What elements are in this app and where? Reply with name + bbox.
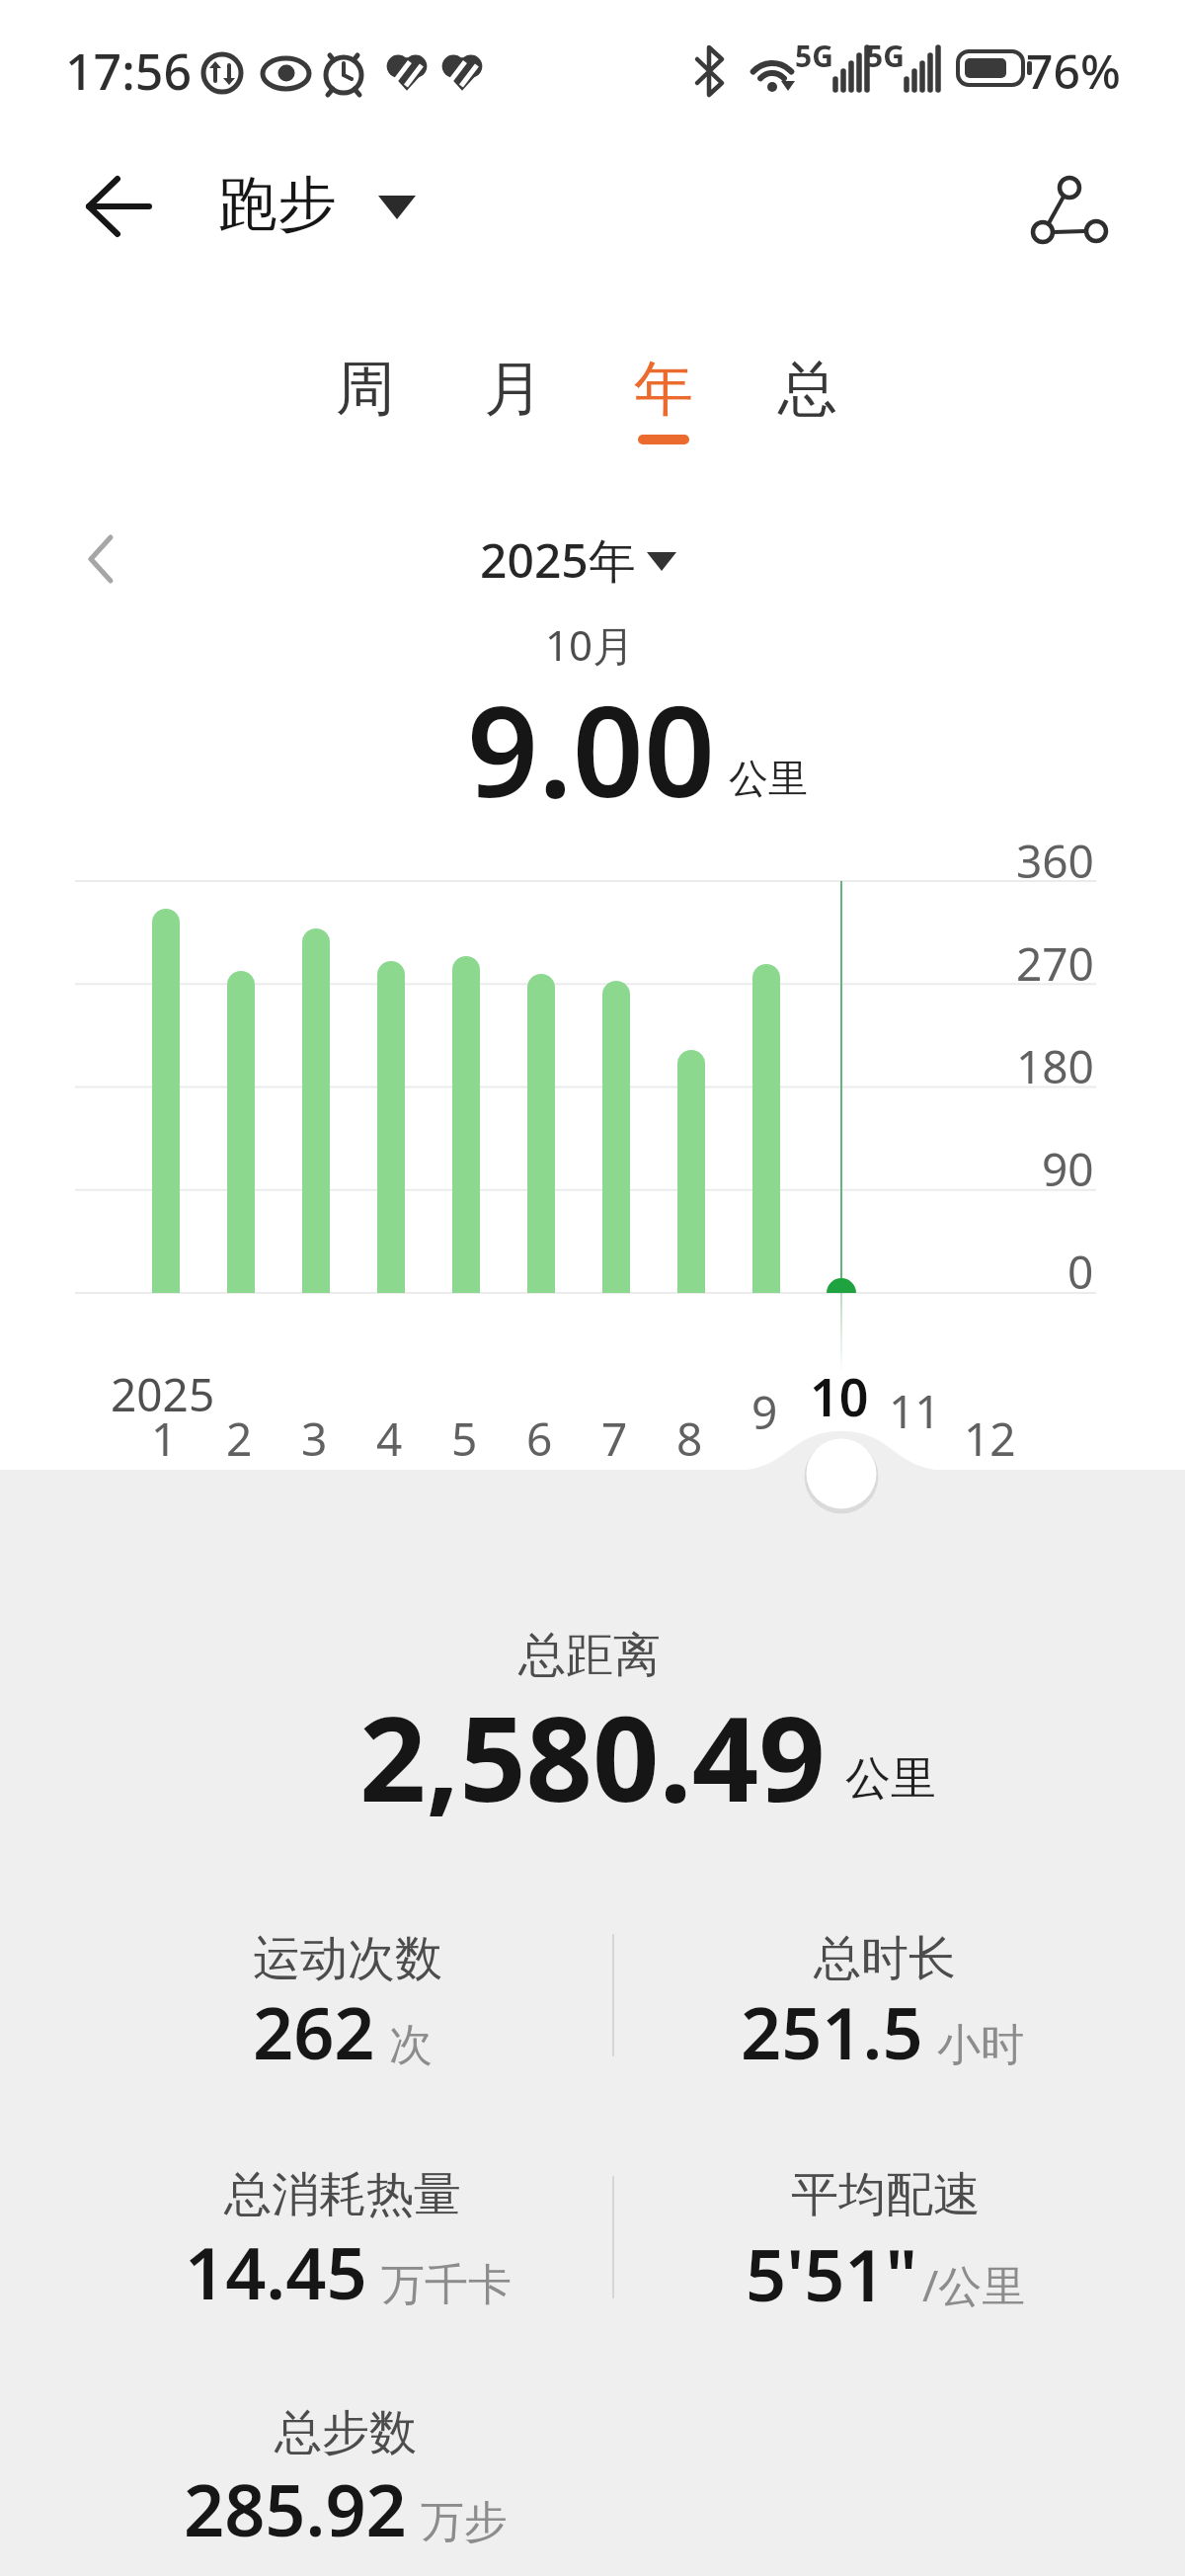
staticText: 12: [964, 1408, 1016, 1470]
button[interactable]: [1017, 158, 1126, 267]
staticText: 285.92: [184, 2460, 407, 2557]
staticText: 次: [389, 2018, 433, 2072]
staticText: 2: [226, 1408, 253, 1470]
staticText: 3: [301, 1408, 328, 1470]
staticText: 2025: [111, 1363, 215, 1425]
staticText: 月: [484, 352, 543, 427]
staticText: 2,580.49: [359, 1677, 826, 1836]
staticText: 总消耗热量: [224, 2165, 461, 2224]
staticText: 万步: [421, 2495, 508, 2549]
staticText: 9.00: [467, 664, 715, 834]
staticText: 5: [451, 1408, 478, 1470]
staticText: 10: [810, 1361, 869, 1431]
staticText: 公里: [729, 754, 808, 803]
button[interactable]: [59, 168, 178, 247]
staticText: 公里: [845, 1750, 936, 1808]
staticText: 0: [1067, 1241, 1094, 1303]
staticText: 5G: [795, 36, 833, 76]
staticText: 90: [1042, 1138, 1094, 1200]
button[interactable]: 月: [118, 330, 908, 448]
staticText: 9: [751, 1381, 778, 1443]
staticText: 270: [1016, 932, 1094, 995]
staticText: 251.5: [741, 1983, 923, 2080]
staticText: 总时长: [814, 1929, 956, 1988]
button[interactable]: 跑步: [0, 145, 672, 264]
button[interactable]: 年: [269, 330, 1059, 448]
staticText: 2025年: [480, 527, 636, 593]
staticText: 4: [376, 1408, 403, 1470]
staticText: 180: [1016, 1035, 1094, 1097]
staticText: 5G: [866, 36, 905, 76]
button[interactable]: 周: [0, 330, 760, 448]
staticText: 262: [253, 1983, 375, 2080]
staticText: 17:56: [65, 38, 192, 105]
staticText: 运动次数: [253, 1929, 442, 1988]
staticText: 14.45: [185, 2223, 367, 2320]
staticText: 7: [601, 1408, 628, 1470]
staticText: 76%: [1026, 39, 1121, 103]
staticText: 小时: [937, 2018, 1024, 2072]
staticText: 平均配速: [791, 2165, 981, 2224]
staticText: 10月: [545, 616, 635, 673]
staticText: 360: [1016, 830, 1094, 892]
staticText: 年: [634, 352, 693, 427]
staticText: 1: [151, 1408, 178, 1470]
staticText: 总距离: [518, 1626, 661, 1685]
button[interactable]: 2025年: [163, 511, 953, 609]
staticText: 跑步: [218, 167, 337, 242]
button[interactable]: 总: [413, 330, 1185, 448]
staticText: 6: [526, 1408, 553, 1470]
staticText: 8: [676, 1408, 703, 1470]
staticText: 万千卡: [381, 2258, 512, 2312]
staticText: /公里: [922, 2255, 1026, 2314]
staticText: 周: [336, 352, 395, 427]
staticText: 11: [889, 1380, 941, 1442]
staticText: 5'51": [746, 2225, 918, 2322]
staticText: 总步数: [275, 2403, 417, 2462]
button[interactable]: [806, 1438, 877, 1509]
staticText: 总: [778, 352, 837, 427]
